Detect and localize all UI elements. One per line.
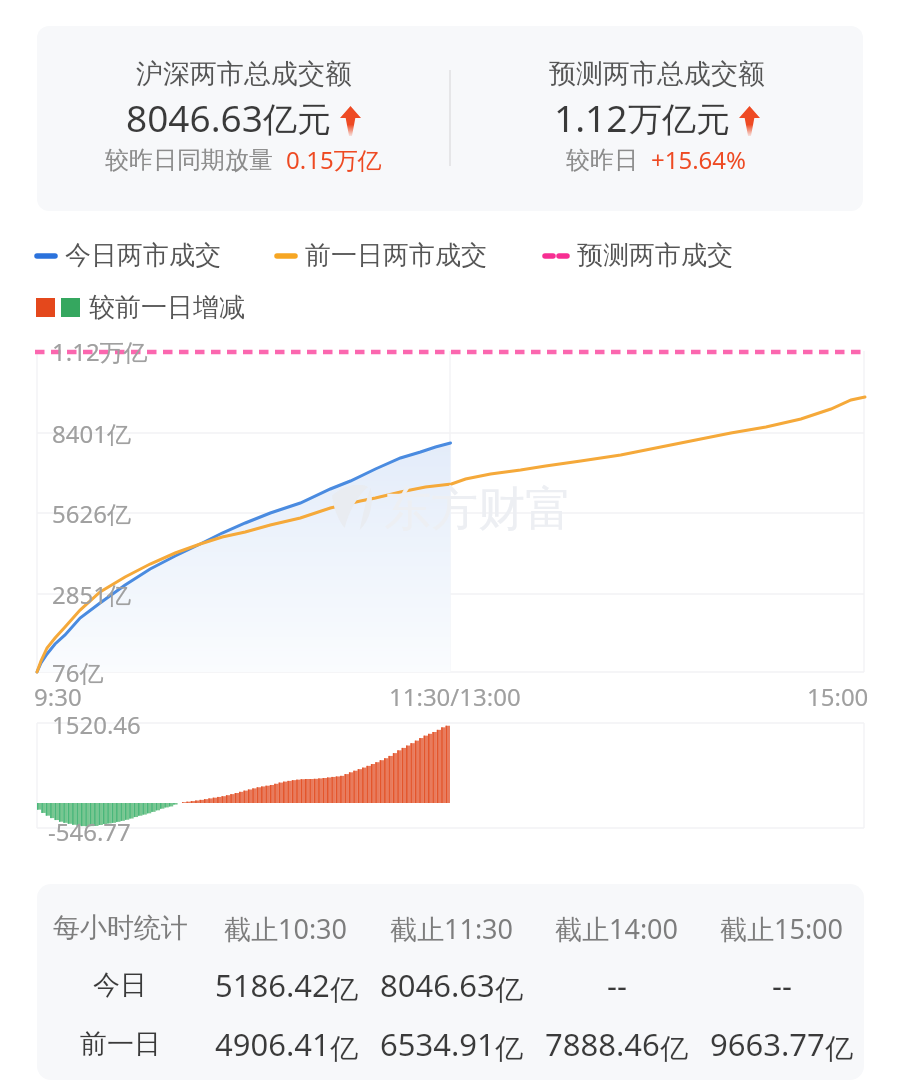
staticText: 2851亿 bbox=[52, 578, 131, 611]
staticText: -- bbox=[772, 964, 792, 1006]
staticText: 5186.42 bbox=[215, 964, 330, 1006]
staticText: +15.64% bbox=[651, 143, 747, 176]
button[interactable]: 沪深两市总成交额 bbox=[37, 26, 863, 211]
button[interactable]: 较前一日增减 bbox=[36, 291, 245, 324]
staticText: 较昨日同期放量 bbox=[105, 145, 273, 175]
staticText: 1.12万亿 bbox=[52, 335, 148, 368]
staticText: 今日 bbox=[93, 968, 147, 1002]
staticText: 每小时统计 bbox=[53, 911, 188, 945]
staticText: 1520.46 bbox=[52, 708, 141, 741]
button[interactable]: 每小时统计 bbox=[37, 884, 864, 1080]
staticText: 8401亿 bbox=[52, 417, 131, 450]
staticText: 11:30/13:00 bbox=[389, 680, 521, 713]
staticText: 1.12 bbox=[554, 92, 628, 142]
button[interactable]: 前一日两市成交 bbox=[276, 239, 487, 272]
button[interactable]: 今日两市成交 bbox=[36, 239, 221, 272]
staticText: 5626亿 bbox=[52, 497, 131, 530]
staticText: 亿 bbox=[330, 972, 358, 1007]
staticText: 截止14:00 bbox=[555, 910, 679, 947]
staticText: 76亿 bbox=[52, 656, 104, 689]
staticText: 亿 bbox=[495, 972, 523, 1007]
staticText: 前一日 bbox=[80, 1027, 161, 1061]
button[interactable]: 预测两市成交 bbox=[544, 239, 733, 272]
staticText: 8046.63 bbox=[126, 92, 263, 142]
staticText: 截止11:30 bbox=[390, 910, 514, 947]
staticText: 6534.91 bbox=[380, 1023, 495, 1065]
staticText: 较前一日增减 bbox=[89, 291, 245, 324]
staticText: 9663.77 bbox=[710, 1023, 825, 1065]
staticText: 7888.46 bbox=[545, 1023, 660, 1065]
staticText: 8046.63 bbox=[380, 964, 495, 1006]
staticText: 预测两市成交 bbox=[577, 239, 733, 272]
staticText: 截止10:30 bbox=[224, 910, 348, 947]
staticText: 前一日两市成交 bbox=[305, 239, 487, 272]
staticText: 亿 bbox=[660, 1031, 688, 1066]
staticText: 亿元 bbox=[263, 98, 331, 141]
staticText: 亿 bbox=[330, 1031, 358, 1066]
staticText: 亿 bbox=[495, 1031, 523, 1066]
staticText: 东方财富 bbox=[384, 480, 572, 539]
staticText: 亿 bbox=[825, 1031, 853, 1066]
staticText: 今日两市成交 bbox=[65, 239, 221, 272]
staticText: 沪深两市总成交额 bbox=[136, 57, 352, 91]
staticText: 4906.41 bbox=[215, 1023, 330, 1065]
staticText: 0.15万亿 bbox=[286, 143, 382, 176]
staticText: -546.77 bbox=[48, 815, 131, 848]
staticText: 较昨日 bbox=[566, 145, 638, 175]
staticText: 截止15:00 bbox=[720, 910, 844, 947]
staticText: 预测两市总成交额 bbox=[549, 57, 765, 91]
staticText: -- bbox=[607, 964, 627, 1006]
staticText: 万亿元 bbox=[628, 98, 730, 141]
staticText: 15:00 bbox=[807, 680, 869, 713]
staticText: 9:30 bbox=[34, 680, 82, 713]
